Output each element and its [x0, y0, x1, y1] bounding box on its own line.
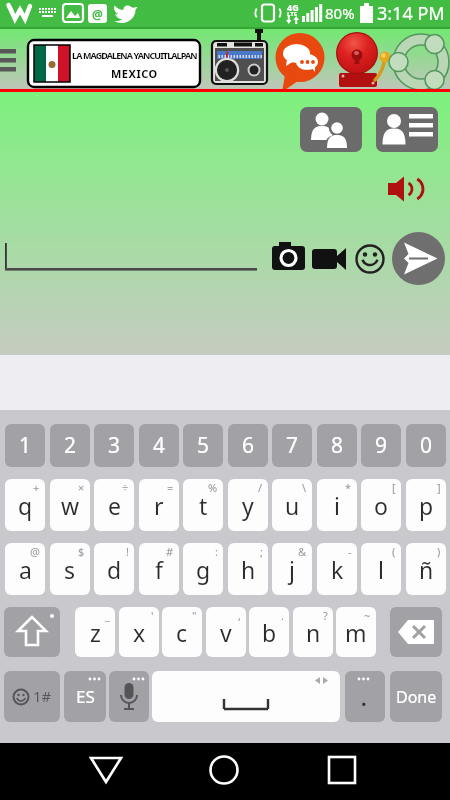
staticText: i [334, 490, 340, 521]
button[interactable] [391, 30, 450, 90]
button[interactable]: 1# [4, 671, 60, 722]
staticText: j [289, 554, 295, 585]
staticText: ] [437, 480, 441, 495]
button[interactable] [152, 671, 340, 722]
button[interactable] [312, 248, 347, 270]
button[interactable]: 5 [183, 424, 223, 467]
button[interactable]: 1 [5, 424, 45, 467]
button[interactable]: w [50, 479, 90, 531]
button[interactable]: j [272, 543, 312, 595]
button[interactable]: 7 [272, 424, 312, 467]
button[interactable]: p [406, 479, 446, 531]
button[interactable] [210, 29, 268, 87]
staticText: . [281, 608, 284, 623]
button[interactable] [208, 754, 240, 786]
button[interactable]: c [162, 607, 202, 657]
button[interactable] [327, 754, 357, 786]
button[interactable]: o [361, 479, 401, 531]
button[interactable]: s [50, 543, 90, 595]
button[interactable]: a [5, 543, 45, 595]
staticText: f [155, 554, 163, 585]
button[interactable] [109, 671, 149, 722]
staticText: : [215, 544, 218, 559]
button[interactable] [333, 30, 391, 88]
staticText: 9 [375, 431, 388, 460]
staticText: u [285, 490, 300, 521]
staticText: ( [392, 544, 396, 559]
button[interactable]: 4 [139, 424, 179, 467]
button[interactable]: l [361, 543, 401, 595]
staticText: e [108, 490, 121, 521]
button[interactable] [0, 49, 16, 72]
button[interactable] [4, 607, 60, 657]
button[interactable]: t [183, 479, 223, 531]
button[interactable] [300, 107, 362, 152]
staticText: 0 [420, 431, 433, 460]
button[interactable]: f [139, 543, 179, 595]
button[interactable] [89, 754, 123, 786]
staticText: 6 [242, 431, 255, 460]
button[interactable]: e [94, 479, 134, 531]
staticText: 4 [153, 431, 166, 460]
staticText: y [242, 490, 254, 521]
button[interactable]: u [272, 479, 312, 531]
button[interactable] [390, 607, 442, 657]
button[interactable] [387, 176, 418, 202]
button[interactable]: d [94, 543, 134, 595]
button[interactable]: LA MAGDALENA YANCUITLALPAN [27, 39, 201, 88]
button[interactable]: x [119, 607, 159, 657]
staticText: h [241, 554, 256, 585]
button[interactable]: ñ [406, 543, 446, 595]
staticText: ) [437, 544, 441, 559]
staticText: 3 [108, 431, 121, 460]
staticText: . [361, 685, 367, 712]
button[interactable]: 2 [50, 424, 90, 467]
staticText: - [348, 544, 352, 559]
button[interactable]: v [206, 607, 246, 657]
staticText: 2 [64, 431, 77, 460]
staticText: " [192, 608, 197, 623]
button[interactable]: i [317, 479, 357, 531]
button[interactable] [392, 232, 445, 285]
staticText: & [298, 544, 307, 559]
button[interactable]: h [228, 543, 268, 595]
button[interactable]: k [317, 543, 357, 595]
staticText: z [90, 617, 101, 648]
staticText: * [345, 480, 352, 495]
button[interactable] [376, 107, 438, 152]
button[interactable] [272, 242, 306, 272]
button[interactable]: 6 [228, 424, 268, 467]
button[interactable]: 0 [406, 424, 446, 467]
staticText: 80% [325, 3, 355, 23]
button[interactable]: . [345, 671, 385, 722]
staticText: a [19, 554, 32, 585]
button[interactable] [273, 31, 327, 93]
button[interactable]: 9 [361, 424, 401, 467]
button[interactable] [0, 232, 270, 272]
staticText: g [196, 554, 211, 585]
staticText: r [154, 490, 164, 521]
button[interactable]: 8 [317, 424, 357, 467]
button[interactable]: g [183, 543, 223, 595]
button[interactable]: z [75, 607, 115, 657]
button[interactable] [355, 244, 385, 274]
button[interactable]: q [5, 479, 45, 531]
staticText: % [208, 480, 218, 495]
staticText: ~ [364, 608, 371, 623]
button[interactable]: 3 [94, 424, 134, 467]
staticText: c [176, 617, 188, 648]
button[interactable]: b [249, 607, 289, 657]
staticText: t [199, 490, 208, 521]
staticText: d [107, 554, 122, 585]
button[interactable]: n [293, 607, 333, 657]
staticText: # [166, 544, 174, 559]
staticText: ÷ [122, 480, 129, 495]
button[interactable]: y [228, 479, 268, 531]
button[interactable]: m [336, 607, 376, 657]
staticText: ; [260, 544, 263, 559]
button[interactable]: Done [390, 671, 442, 722]
staticText: w [61, 490, 80, 521]
button[interactable]: ES [64, 671, 106, 722]
button[interactable]: r [139, 479, 179, 531]
staticText: \ [302, 480, 307, 495]
